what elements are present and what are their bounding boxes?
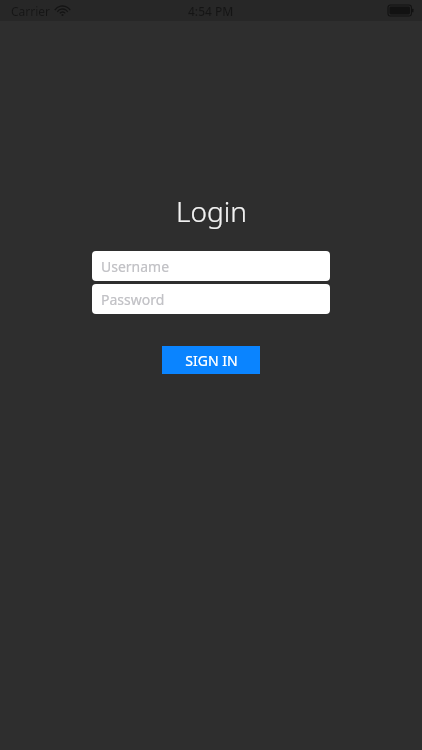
staticText: Login [176,192,247,230]
button[interactable]: SIGN IN [162,346,260,374]
staticText: Password [101,290,165,309]
staticText: Username [101,257,170,276]
button[interactable]: Username [92,251,330,281]
staticText: 4:54 PM [188,3,234,19]
button[interactable]: Password [92,284,330,314]
staticText: Carrier [11,3,51,19]
staticText: SIGN IN [185,351,238,370]
